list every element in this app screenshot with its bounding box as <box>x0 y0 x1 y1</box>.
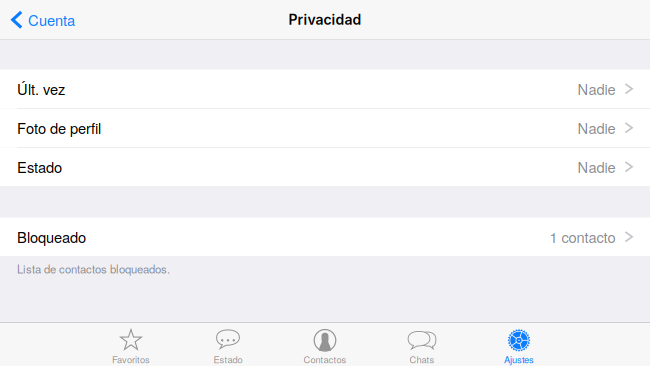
staticText: Foto de perfil <box>17 117 101 138</box>
button[interactable]: Cuenta <box>0 0 84 39</box>
button[interactable]: Últ. vez <box>0 69 650 108</box>
staticText: Nadie <box>577 156 615 177</box>
staticText: Últ. vez <box>17 78 65 99</box>
button[interactable]: Bloqueado <box>0 217 650 256</box>
button[interactable]: Estado <box>179 322 276 366</box>
staticText: Estado <box>17 156 62 177</box>
staticText: Bloqueado <box>17 226 86 247</box>
staticText: Contactos <box>303 353 346 366</box>
button[interactable]: Favoritos <box>82 322 179 366</box>
staticText: Estado <box>213 353 242 366</box>
staticText: 1 contacto <box>549 226 615 247</box>
staticText: Privacidad <box>288 11 361 28</box>
staticText: Cuenta <box>28 9 75 30</box>
staticText: Nadie <box>577 117 615 138</box>
staticText: Ajustes <box>504 353 534 366</box>
staticText: Favoritos <box>112 353 150 366</box>
button[interactable]: Ajustes <box>470 322 567 366</box>
button[interactable]: Chats <box>373 322 470 366</box>
staticText: Lista de contactos bloqueados. <box>17 260 170 277</box>
button[interactable]: Contactos <box>276 322 373 366</box>
staticText: Nadie <box>577 78 615 99</box>
button[interactable]: Estado <box>0 147 650 186</box>
button[interactable]: Foto de perfil <box>0 108 650 147</box>
staticText: Chats <box>409 353 434 366</box>
